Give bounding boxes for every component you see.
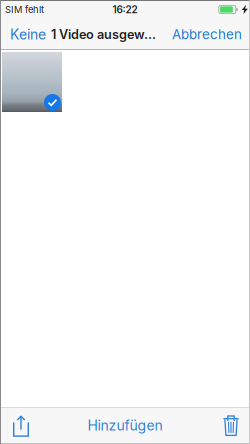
button[interactable]: Abbrechen	[167, 19, 250, 50]
staticText: SIM fehlt	[5, 4, 44, 15]
staticText: 1 Video ausgew...	[51, 27, 156, 42]
button[interactable]: Hinzufügen	[75, 407, 174, 444]
button[interactable]: Löschen	[216, 407, 244, 444]
staticText: 16:22	[112, 3, 137, 16]
staticText: Hinzufügen	[87, 417, 162, 434]
staticText: Abbrechen	[172, 26, 242, 42]
button[interactable]: Video 1, ausgewählt	[2, 52, 62, 112]
button[interactable]: Keine	[0, 19, 46, 50]
button[interactable]: Teilen	[6, 407, 36, 444]
staticText: Keine	[10, 26, 46, 43]
